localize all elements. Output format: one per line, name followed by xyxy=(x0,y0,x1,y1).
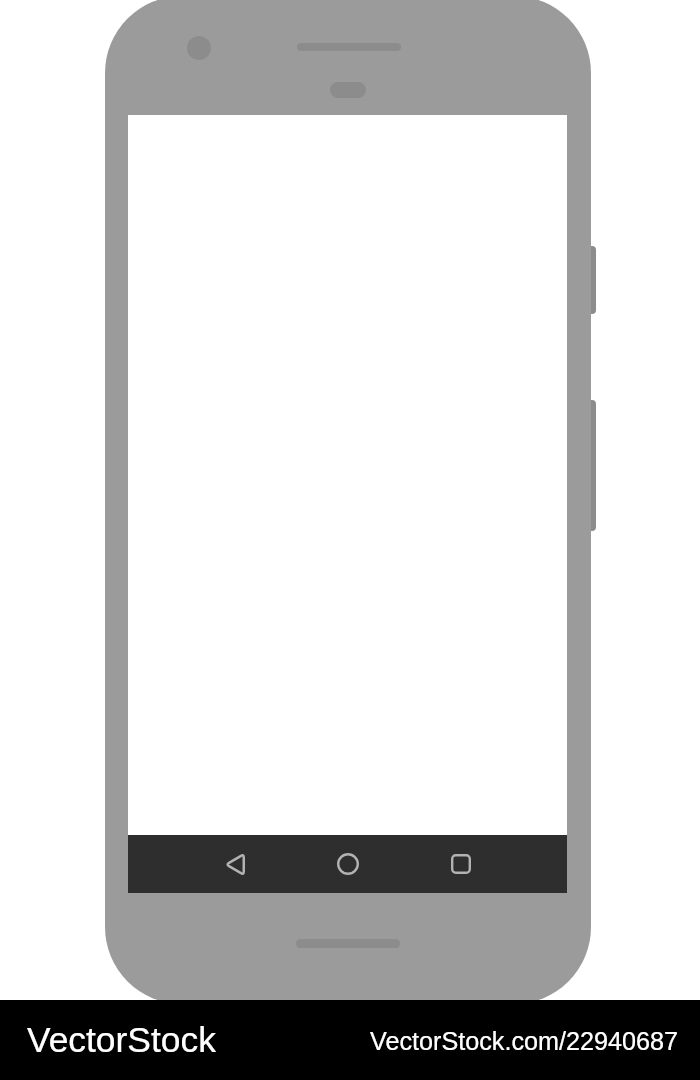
button[interactable]: Recent apps xyxy=(404,835,516,893)
button[interactable]: Power button xyxy=(588,400,596,531)
staticText: VectorStock.com/22940687 xyxy=(370,1027,679,1055)
button[interactable]: Back xyxy=(179,835,291,893)
button[interactable]: Volume button xyxy=(588,246,596,314)
button[interactable]: Home xyxy=(291,835,404,893)
staticText: VectorStock xyxy=(27,1020,216,1060)
